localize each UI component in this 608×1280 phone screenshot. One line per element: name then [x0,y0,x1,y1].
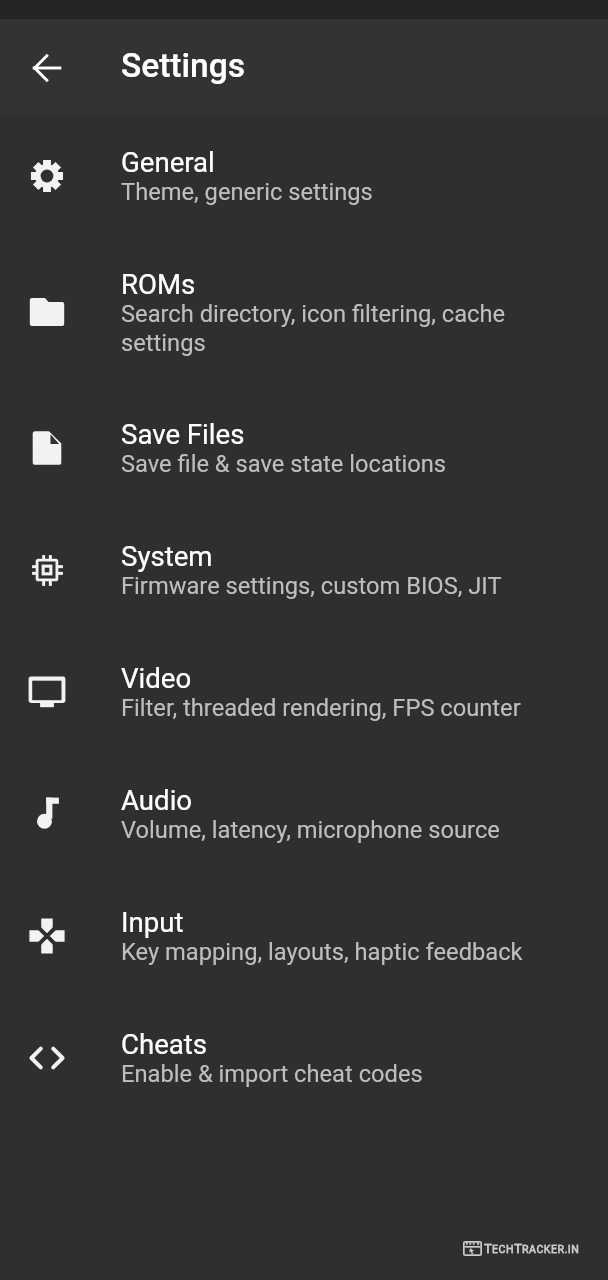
button[interactable]: Back [14,35,80,101]
staticText: Input [121,906,184,938]
staticText: T [514,1241,522,1256]
button[interactable]: System [0,509,608,631]
staticText: Settings [121,46,246,85]
staticText: Filter, threaded rendering, FPS counter [121,694,521,722]
staticText: Volume, latency, microphone source [121,816,500,844]
staticText: RACKER.IN [522,1243,580,1255]
staticText: Video [121,662,192,694]
staticText: Theme, generic settings [121,178,373,206]
button[interactable]: General [0,115,608,237]
button[interactable]: Video [0,631,608,753]
staticText: System [121,540,213,572]
button[interactable]: Cheats [0,997,608,1119]
button[interactable]: Save Files [0,387,608,509]
button[interactable]: Audio [0,753,608,875]
staticText: Search directory, icon filtering, cache … [121,300,584,356]
staticText: Key mapping, layouts, haptic feedback [121,938,523,966]
staticText: Firmware settings, custom BIOS, JIT [121,572,502,600]
button[interactable]: Input [0,875,608,997]
staticText: ECH [492,1243,514,1255]
staticText: Save file & save state locations [121,450,447,478]
staticText: T [484,1241,492,1256]
staticText: General [121,146,215,178]
staticText: Enable & import cheat codes [121,1060,423,1088]
staticText: Save Files [121,418,245,450]
button[interactable]: ROMs [0,237,608,387]
staticText: ROMs [121,268,196,300]
staticText: Audio [121,784,193,816]
staticText: Cheats [121,1028,208,1060]
